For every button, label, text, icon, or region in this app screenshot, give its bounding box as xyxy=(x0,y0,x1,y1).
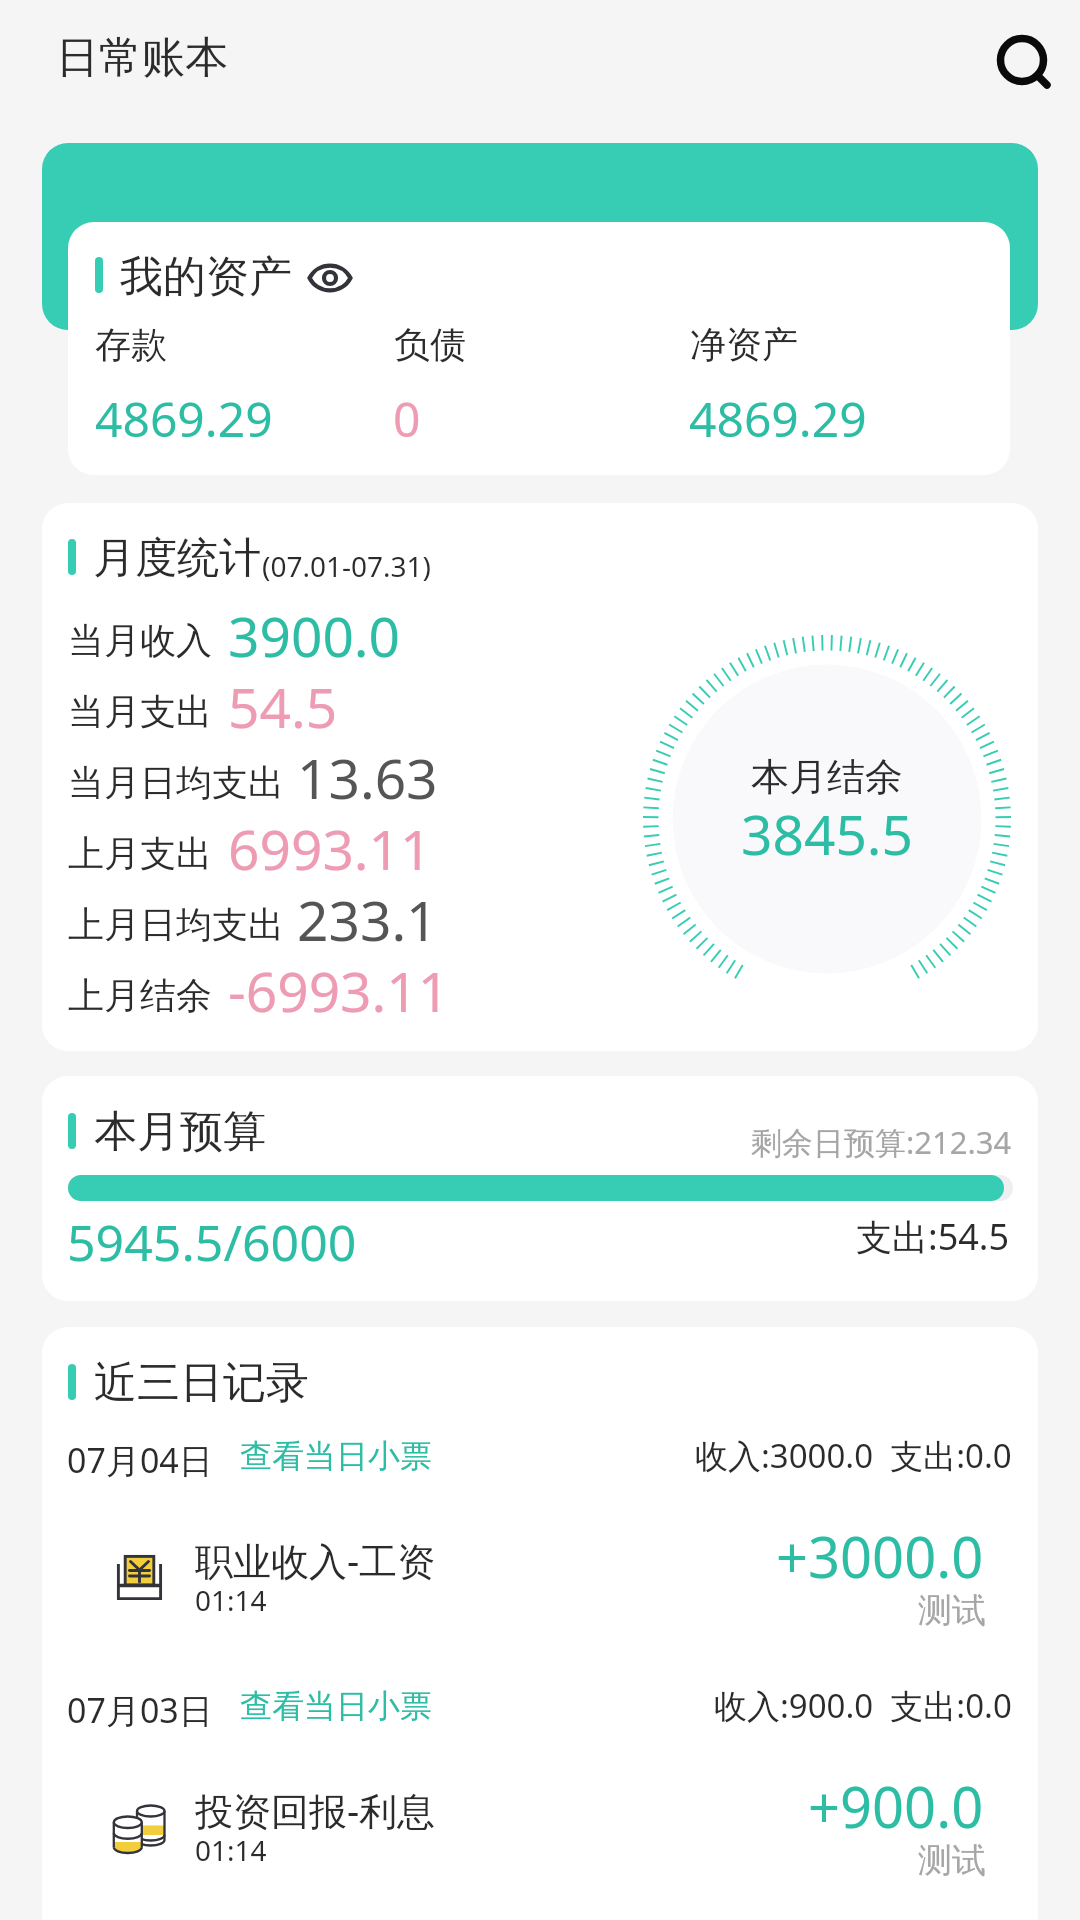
staticText: 3900.0 xyxy=(228,598,401,673)
staticText: 当月收入 xyxy=(68,618,212,663)
staticText: 当月日均支出 xyxy=(68,760,284,805)
staticText: 6993.11 xyxy=(228,811,432,886)
staticText: 我的资产 xyxy=(120,250,292,304)
staticText: 07月04日 xyxy=(67,1437,213,1483)
staticText: 本月预算 xyxy=(94,1105,266,1159)
button[interactable]: Toggle amount visibility xyxy=(306,254,354,302)
button[interactable]: 我的资产 xyxy=(68,222,1010,475)
staticText: 54.5 xyxy=(228,669,338,744)
staticText: +3000.0 xyxy=(776,1518,984,1594)
staticText: 测试 xyxy=(918,1589,986,1632)
staticText: 01:14 xyxy=(195,1831,267,1869)
staticText: 日常账本 xyxy=(56,31,228,85)
staticText: 查看当日小票 xyxy=(240,1436,432,1476)
staticText: 投资回报-利息 xyxy=(195,1784,436,1836)
staticText: 当月支出 xyxy=(68,689,212,734)
staticText: 4869.29 xyxy=(95,386,273,451)
staticText: 上月日均支出 xyxy=(68,902,284,947)
staticText: 本月结余 xyxy=(751,753,903,801)
staticText: 月度统计 xyxy=(93,532,261,585)
button[interactable]: 职业收入-工资 xyxy=(68,1510,1010,1618)
button[interactable]: 查看当日小票 xyxy=(240,1436,432,1476)
staticText: 负债 xyxy=(394,322,466,367)
staticText: 近三日记录 xyxy=(94,1356,309,1410)
button[interactable]: 投资回报-利息 xyxy=(68,1760,1010,1868)
staticText: 测试 xyxy=(918,1839,986,1882)
staticText: 剩余日预算:212.34 xyxy=(751,1121,1012,1163)
staticText: 支出:54.5 xyxy=(856,1212,1010,1261)
staticText: 07月03日 xyxy=(67,1687,213,1733)
staticText: +900.0 xyxy=(808,1768,984,1844)
button[interactable]: 本月预算 xyxy=(42,1076,1038,1301)
staticText: 查看当日小票 xyxy=(240,1686,432,1726)
staticText: 233.1 xyxy=(297,882,438,957)
staticText: 5945.5/6000 xyxy=(67,1208,357,1276)
staticText: 01:14 xyxy=(195,1581,267,1619)
button[interactable]: 月度统计 xyxy=(42,503,1038,1051)
staticText: 4869.29 xyxy=(689,386,867,451)
staticText: 收入:900.0 支出:0.0 xyxy=(714,1683,1012,1728)
staticText: 0 xyxy=(393,386,421,451)
staticText: 净资产 xyxy=(690,322,798,367)
staticText: 上月结余 xyxy=(68,973,212,1018)
staticText: -6993.11 xyxy=(228,953,450,1028)
staticText: 上月支出 xyxy=(68,831,212,876)
button[interactable]: 查看当日小票 xyxy=(240,1686,432,1726)
staticText: 13.63 xyxy=(297,740,438,815)
staticText: (07.01-07.31) xyxy=(262,547,431,585)
button[interactable]: Search xyxy=(976,14,1068,106)
staticText: 职业收入-工资 xyxy=(195,1534,436,1586)
staticText: 3845.5 xyxy=(741,796,914,871)
staticText: 存款 xyxy=(95,322,167,367)
staticText: 收入:3000.0 支出:0.0 xyxy=(695,1433,1012,1478)
